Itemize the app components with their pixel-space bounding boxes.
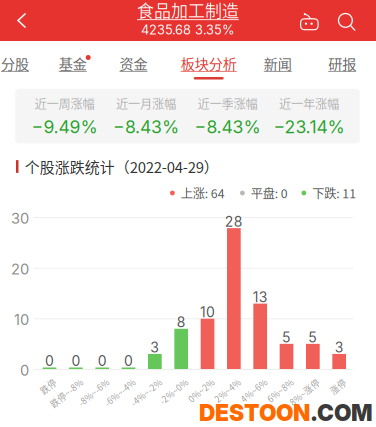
staticText: 3 <box>335 339 344 356</box>
button[interactable]: 研报 <box>318 48 366 78</box>
staticText: 研报 <box>328 53 356 73</box>
staticText: 分股 <box>1 53 29 73</box>
staticText: 个股涨跌统计（2022-04-29） <box>25 156 219 177</box>
staticText: -8%~-6% <box>67 376 104 388</box>
staticText: 0 <box>98 352 107 369</box>
staticText: -2%~0% <box>149 376 183 388</box>
staticText: 近一季涨幅 <box>198 94 258 112</box>
staticText: −8.43% <box>195 116 261 138</box>
staticText: −23.14% <box>274 116 345 138</box>
staticText: 28 <box>225 213 243 230</box>
staticText: 0 <box>71 352 80 369</box>
button[interactable]: Back <box>0 0 44 41</box>
staticText: 涨停 <box>323 376 341 388</box>
button[interactable]: 基金 <box>49 48 97 78</box>
staticText: 5 <box>282 329 291 346</box>
staticText: -4%~-2% <box>120 376 157 388</box>
staticText: 资金 <box>119 53 147 73</box>
staticText: 3 <box>150 339 159 356</box>
staticText: 板块分析 <box>181 53 237 73</box>
staticText: 跌停 <box>34 376 52 388</box>
staticText: 下跌: 11 <box>312 184 356 202</box>
button[interactable]: 板块分析 <box>171 48 247 78</box>
staticText: 30 <box>11 209 29 227</box>
button[interactable]: Search <box>329 0 365 41</box>
staticText: 上涨: 64 <box>181 184 225 202</box>
staticText: -6%~-4% <box>93 376 130 388</box>
staticText: 20 <box>11 260 29 278</box>
staticText: 6%~8% <box>257 376 288 388</box>
staticText: 2%~4% <box>205 376 236 388</box>
staticText: 跌停~-8% <box>39 376 78 388</box>
staticText: 10 <box>14 311 29 328</box>
staticText: −9.49% <box>32 116 98 138</box>
button[interactable]: 新闻 <box>254 48 302 78</box>
staticText: 0%~2% <box>178 376 209 388</box>
button[interactable]: 资金 <box>109 48 157 78</box>
staticText: 基金 <box>59 53 87 73</box>
staticText: 近一周涨幅 <box>34 94 94 112</box>
button[interactable]: AI assistant <box>293 0 327 41</box>
staticText: −8.43% <box>113 116 179 138</box>
staticText: 0 <box>45 352 54 369</box>
staticText: 8%~涨停 <box>279 376 315 388</box>
staticText: 食品加工制造 <box>137 0 239 22</box>
staticText: 4235.68 3.35% <box>141 22 235 37</box>
staticText: 4%~6% <box>231 376 262 388</box>
staticText: 平盘: 0 <box>251 184 288 202</box>
staticText: 8 <box>177 314 186 331</box>
staticText: 5 <box>308 329 317 346</box>
staticText: 13 <box>253 289 268 305</box>
staticText: DESTOON <box>199 399 310 426</box>
button[interactable]: 分股 <box>0 48 39 78</box>
staticText: .COM <box>310 399 373 426</box>
staticText: 近一月涨幅 <box>116 94 176 112</box>
staticText: 近一年涨幅 <box>279 94 339 112</box>
staticText: 10 <box>200 304 215 321</box>
staticText: 新闻 <box>264 53 292 73</box>
staticText: 0 <box>124 352 133 369</box>
staticText: 0 <box>20 361 29 379</box>
